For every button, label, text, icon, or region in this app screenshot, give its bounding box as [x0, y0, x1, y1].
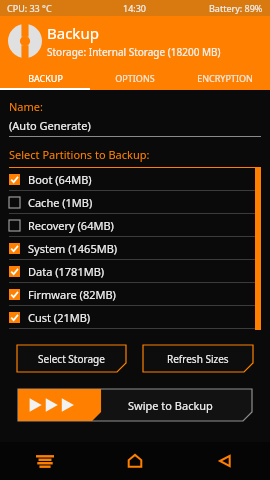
button[interactable]: OPTIONS: [90, 66, 180, 90]
button[interactable]: Firmware (82MB): [0, 283, 270, 306]
staticText: BACKUP: [28, 72, 63, 84]
button[interactable]: Refresh Sizes: [143, 345, 253, 372]
staticText: CPU: 33 °C: [7, 2, 52, 14]
staticText: ENCRYPTION: [197, 72, 253, 84]
button[interactable]: (Auto Generate): [9, 118, 261, 137]
staticText: Firmware (82MB): [28, 287, 116, 302]
staticText: Backup: [47, 23, 99, 43]
staticText: Select Partitions to Backup:: [9, 147, 150, 162]
staticText: Data (1781MB): [28, 264, 105, 279]
staticText: Storage: Internal Storage (18200 MB): [47, 45, 221, 59]
button[interactable]: Back: [180, 442, 270, 480]
staticText: Refresh Sizes: [167, 352, 229, 366]
staticText: Name:: [9, 99, 43, 114]
staticText: Boot (64MB): [28, 172, 92, 187]
staticText: 14:30: [123, 2, 147, 14]
staticText: Recovery (64MB): [28, 218, 114, 233]
button[interactable]: Swipe to Backup: [18, 389, 252, 421]
staticText: (Auto Generate): [9, 118, 91, 133]
staticText: Cache (1MB): [28, 195, 93, 210]
button[interactable]: Select Storage: [17, 345, 126, 372]
staticText: Select Storage: [38, 352, 105, 366]
button[interactable]: BACKUP: [0, 66, 90, 90]
button[interactable]: Menu: [0, 442, 90, 480]
button[interactable]: ENCRYPTION: [180, 66, 270, 90]
button[interactable]: Data (1781MB): [0, 260, 270, 283]
button[interactable]: Cust (21MB): [0, 306, 270, 329]
staticText: System (1465MB): [28, 241, 118, 256]
staticText: Cust (21MB): [28, 310, 91, 325]
button[interactable]: Recovery (64MB): [0, 214, 270, 237]
button[interactable]: System (1465MB): [0, 237, 270, 260]
staticText: Swipe to Backup: [128, 398, 213, 413]
button[interactable]: Cache (1MB): [0, 191, 270, 214]
staticText: Battery: 89%: [209, 2, 263, 14]
button[interactable]: Home: [90, 442, 180, 480]
staticText: OPTIONS: [115, 72, 155, 84]
button[interactable]: Boot (64MB): [0, 168, 270, 191]
